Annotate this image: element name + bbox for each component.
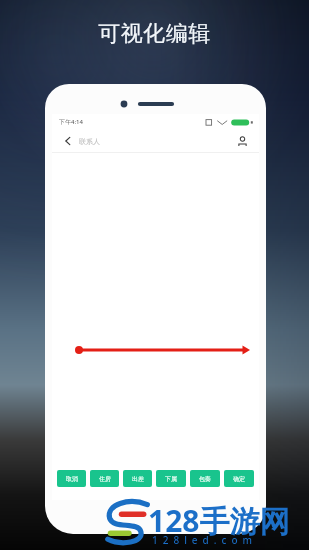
staticText: 出差 — [132, 475, 144, 483]
staticText: 1 2 8 l e d . c o m — [152, 533, 254, 547]
staticText: 下午4:14 — [59, 118, 83, 126]
button[interactable]: 出差 — [123, 470, 152, 487]
button[interactable]: 确定 — [224, 470, 254, 487]
button[interactable]: 住房 — [90, 470, 119, 487]
button[interactable]: 返回 — [60, 133, 76, 149]
staticText: 128手游网 — [148, 500, 290, 541]
button[interactable]: 取消 — [57, 470, 86, 487]
button[interactable]: 下属 — [156, 470, 186, 487]
button[interactable]: 包奏 — [190, 470, 220, 487]
staticText: 包奏 — [199, 475, 211, 483]
button[interactable]: 个人资料 — [233, 132, 251, 150]
staticText: 住房 — [99, 475, 111, 483]
staticText: 可视化编辑 — [98, 20, 211, 48]
staticText: 下属 — [165, 475, 177, 483]
staticText: 确定 — [233, 475, 245, 483]
staticText: 取消 — [66, 475, 78, 483]
staticText: 联系人 — [79, 137, 100, 146]
